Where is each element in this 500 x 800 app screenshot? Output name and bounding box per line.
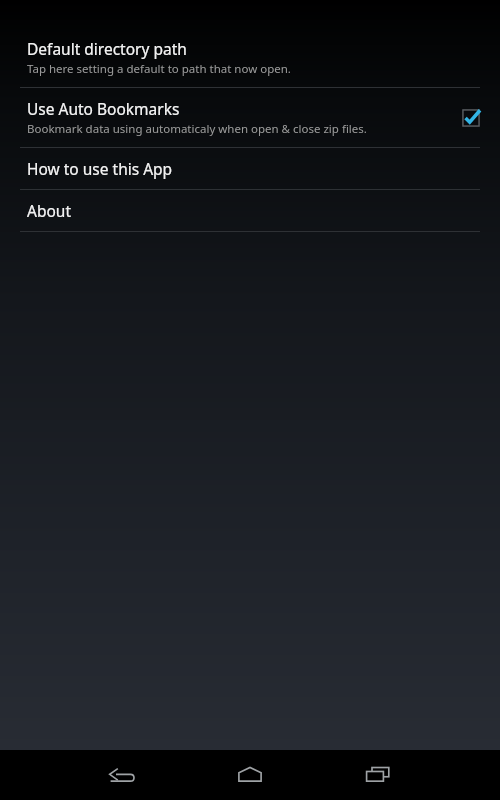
button[interactable]: Back xyxy=(90,750,154,800)
button[interactable]: Use Auto Bookmarks toggle xyxy=(458,105,484,131)
button[interactable]: How to use this App xyxy=(0,148,500,189)
button[interactable]: Default directory path xyxy=(0,28,500,87)
button[interactable]: About xyxy=(0,190,500,231)
staticText: Default directory path xyxy=(27,38,187,59)
button[interactable]: Recent apps xyxy=(346,750,410,800)
staticText: Tap here setting a default to path that … xyxy=(27,61,291,77)
staticText: How to use this App xyxy=(27,158,173,179)
staticText: About xyxy=(27,200,71,221)
staticText: Bookmark data using automaticaly when op… xyxy=(27,121,367,137)
staticText: Use Auto Bookmarks xyxy=(27,98,180,119)
button[interactable]: Home xyxy=(218,750,282,800)
button[interactable]: Use Auto Bookmarks xyxy=(0,88,500,147)
